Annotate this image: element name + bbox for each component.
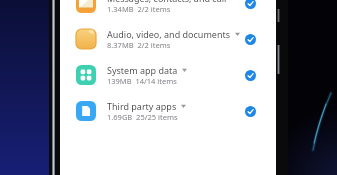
staticText: 1.34MB 2/2 items xyxy=(107,4,171,14)
staticText: Third party apps xyxy=(107,100,177,112)
staticText: 1.69GB 25/25 items xyxy=(107,112,178,122)
button[interactable]: Messages, contacts, and call xyxy=(60,0,276,21)
button[interactable]: Audio, video, and documents xyxy=(60,21,276,57)
staticText: 139MB 14/14 items xyxy=(107,76,177,86)
staticText: Messages, contacts, and call xyxy=(107,0,227,4)
button[interactable]: System app data xyxy=(60,57,276,93)
staticText: System app data xyxy=(107,64,178,76)
staticText: Audio, video, and documents xyxy=(107,28,231,40)
staticText: 8.37MB 2/2 items xyxy=(107,40,171,50)
button[interactable]: Third party apps xyxy=(60,93,276,129)
